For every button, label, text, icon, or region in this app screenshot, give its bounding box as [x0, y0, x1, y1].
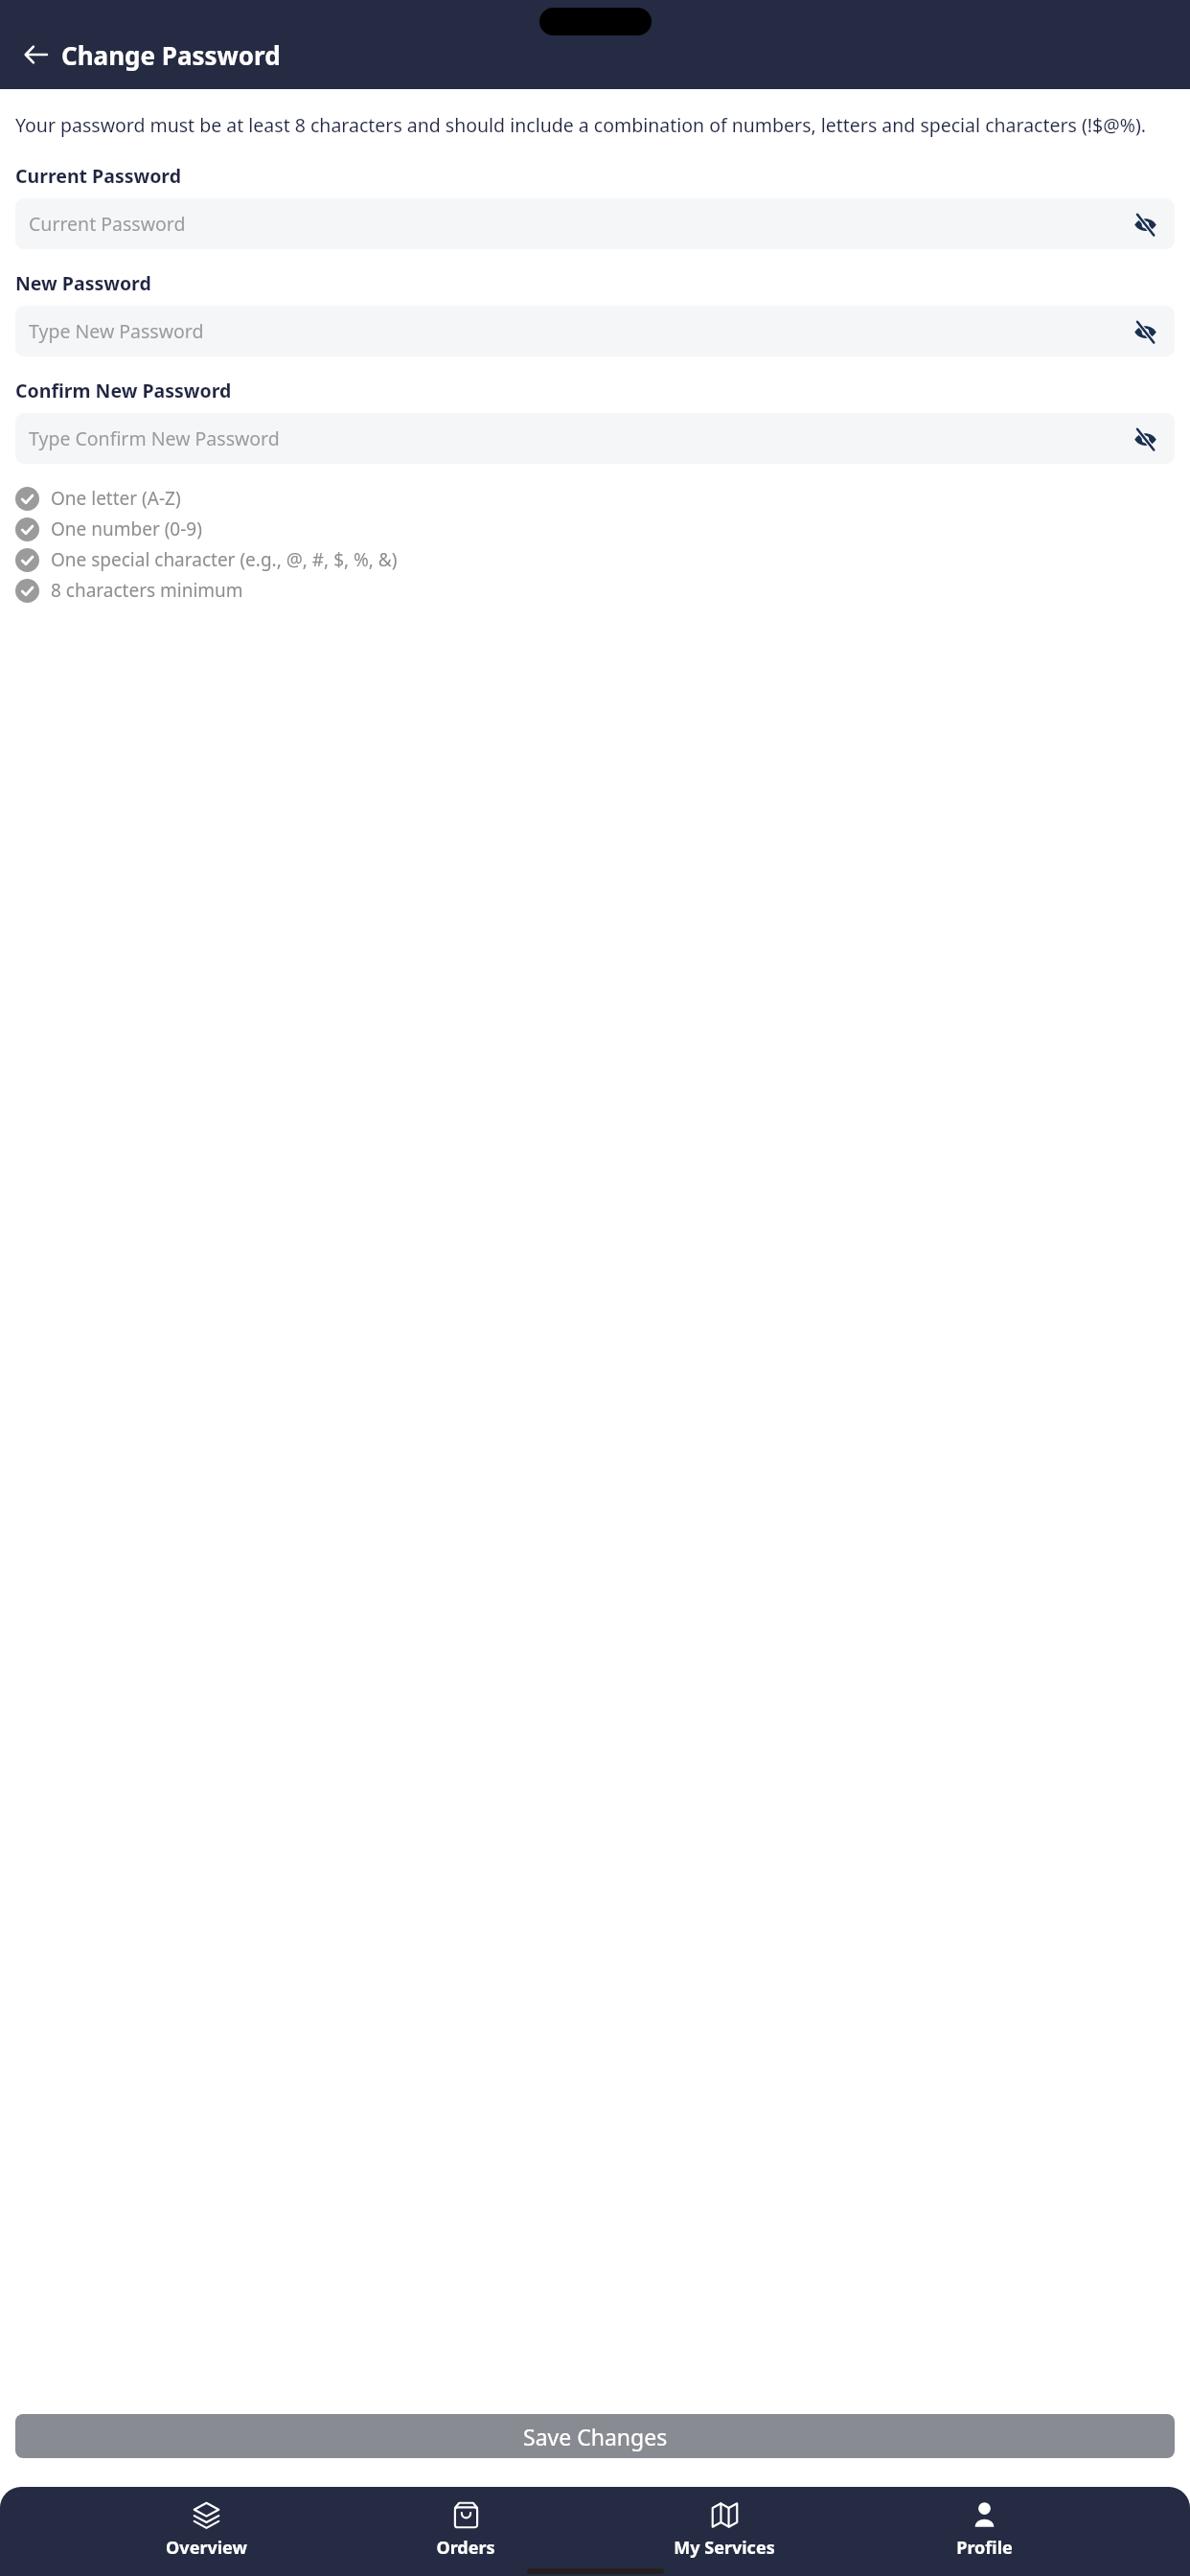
staticText: Orders: [436, 2536, 495, 2560]
staticText: One special character (e.g., @, #, $, %,…: [51, 547, 398, 572]
button[interactable]: Show password: [1129, 315, 1161, 348]
button[interactable]: My Services: [672, 2498, 777, 2563]
staticText: Save Changes: [523, 2422, 668, 2451]
staticText: One letter (A-Z): [51, 486, 181, 511]
staticText: One number (0-9): [51, 517, 202, 541]
staticText: Your password must be at least 8 charact…: [15, 112, 1147, 138]
button[interactable]: Save Changes: [15, 2414, 1175, 2458]
button[interactable]: Back: [15, 34, 57, 76]
button[interactable]: Type New Password: [15, 306, 1175, 356]
button[interactable]: Current Password: [15, 198, 1175, 249]
button[interactable]: Type Confirm New Password: [15, 413, 1175, 464]
button[interactable]: Show password: [1129, 423, 1161, 455]
staticText: Profile: [956, 2536, 1013, 2560]
staticText: Confirm New Password: [15, 378, 232, 403]
staticText: Current Password: [15, 163, 181, 189]
staticText: 8 characters minimum: [51, 578, 243, 603]
staticText: Type New Password: [29, 318, 204, 344]
staticText: Current Password: [29, 211, 186, 237]
button[interactable]: Show password: [1129, 208, 1161, 241]
button[interactable]: Profile: [931, 2498, 1037, 2563]
staticText: New Password: [15, 270, 151, 296]
button[interactable]: Overview: [153, 2498, 259, 2563]
staticText: Overview: [166, 2536, 247, 2560]
staticText: Change Password: [61, 38, 281, 72]
button[interactable]: Orders: [413, 2498, 518, 2563]
staticText: My Services: [674, 2536, 775, 2560]
staticText: Type Confirm New Password: [29, 425, 280, 451]
